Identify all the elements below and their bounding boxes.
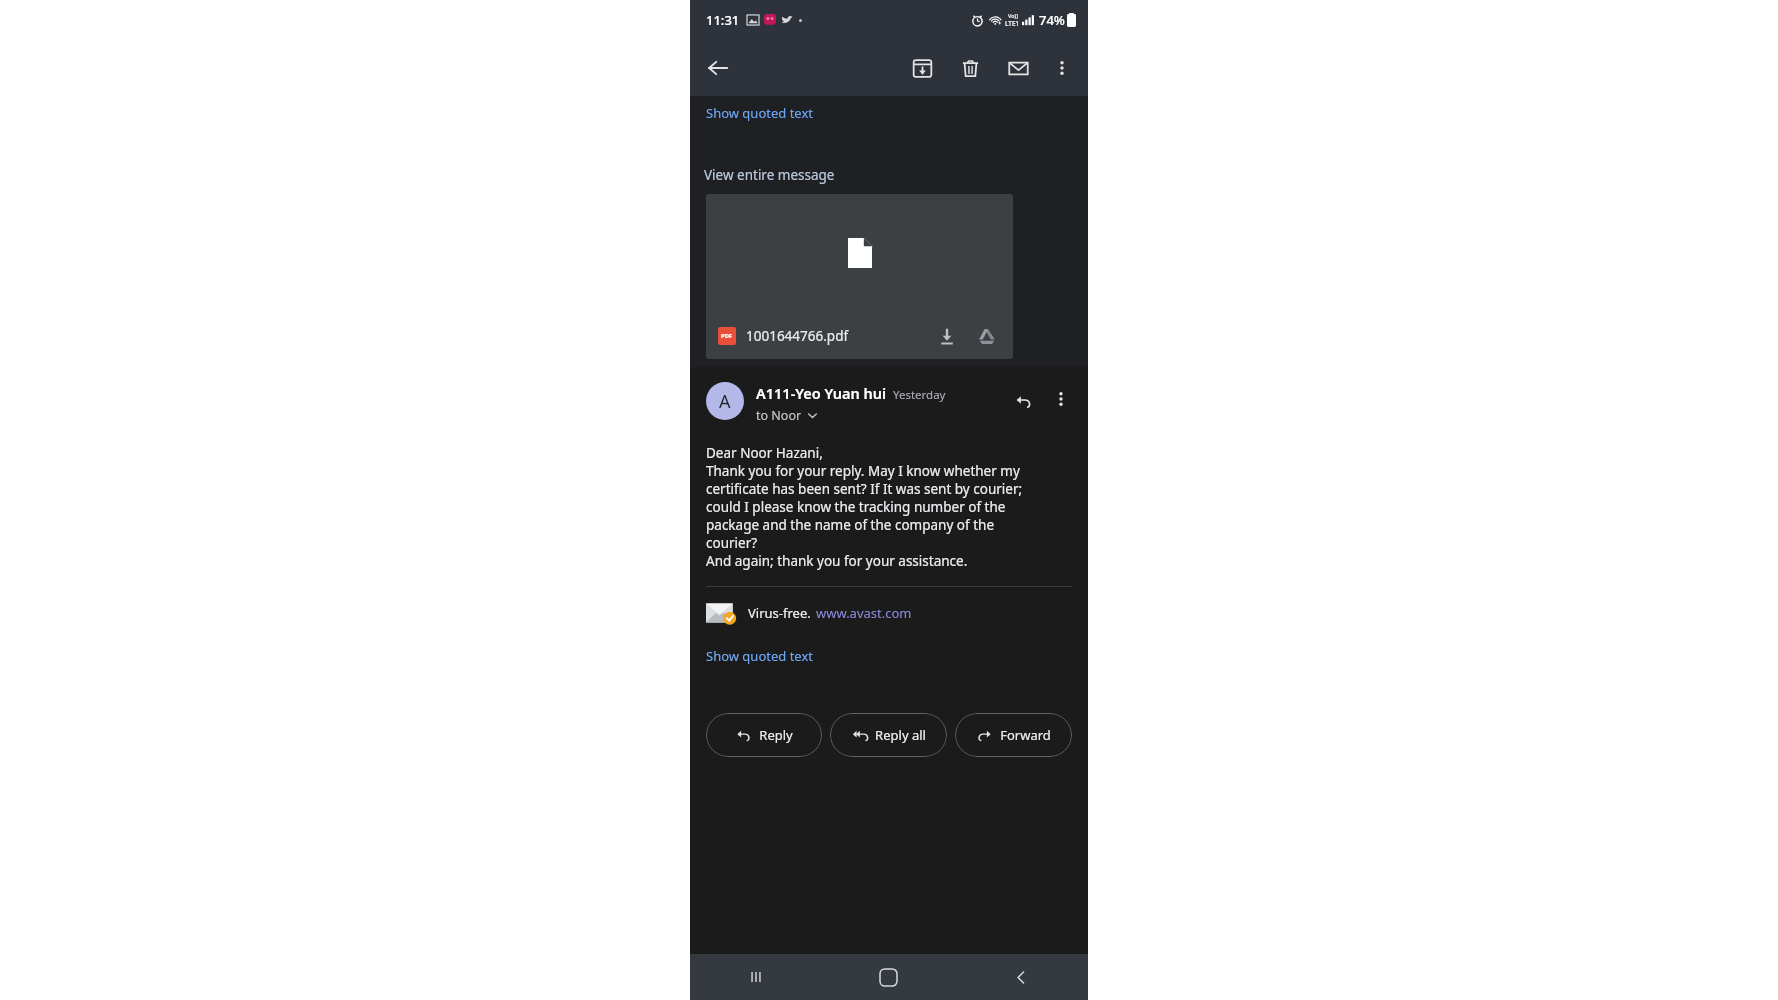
staticText: 11:31 [706,11,740,29]
staticText: Dear Noor Hazani, [706,444,823,462]
staticText: 1001644766.pdf [746,327,849,345]
staticText: LTE1 [1005,19,1020,28]
staticText: PDF [721,332,733,340]
staticText: Forward [1000,726,1051,744]
button[interactable]: Reply [1004,382,1042,420]
staticText: certificate has been sent? If It was sen… [706,480,1023,498]
button[interactable]: Show quoted text [706,647,814,665]
button[interactable]: Show quoted text [706,104,814,122]
button[interactable]: Virus-free. [706,601,912,625]
staticText: Yesterday [893,387,946,403]
staticText: 74% [1039,11,1065,29]
button[interactable]: Delete [948,46,992,90]
button[interactable]: Mark unread [996,46,1040,90]
staticText: Show quoted text [706,104,814,122]
button[interactable]: Reply all [830,713,947,757]
button[interactable]: PDF [706,194,1013,359]
staticText: Reply all [875,726,926,744]
staticText: Thank you for your reply. May I know whe… [706,462,1020,480]
staticText: to Noor [756,407,802,424]
staticText: www.avast.com [816,604,912,622]
staticText: A111-Yeo Yuan hui [756,383,887,403]
staticText: package and the name of the company of t… [706,516,994,534]
button[interactable]: A [706,382,744,420]
staticText: could I please know the tracking number … [706,498,1006,516]
button[interactable]: More options [1044,382,1078,416]
staticText: And again; thank you for your assistance… [706,552,968,570]
button[interactable]: Download attachment [933,322,961,350]
button[interactable]: Back [955,954,1088,1000]
staticText: Vo)) [1008,12,1018,19]
button[interactable]: to Noor [756,407,818,424]
button[interactable]: View entire message [704,166,835,184]
button[interactable]: Back [696,46,740,90]
button[interactable]: Save to Drive [973,322,1001,350]
staticText: Virus-free. [748,604,811,622]
button[interactable]: Recent apps [690,954,822,1000]
button[interactable]: Archive [900,46,944,90]
staticText: A [719,389,731,414]
staticText: courier? [706,534,758,552]
button[interactable]: Forward [955,713,1072,757]
button[interactable]: Home [822,954,955,1000]
staticText: Show quoted text [706,647,814,665]
button[interactable]: Reply [706,713,822,757]
staticText: View entire message [704,166,835,184]
button[interactable]: More options [1042,48,1082,88]
staticText: Reply [759,726,793,744]
